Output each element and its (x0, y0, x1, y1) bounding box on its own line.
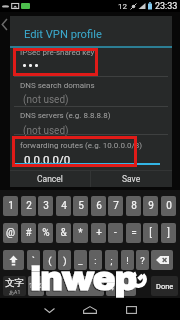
button[interactable]: Back (38, 299, 60, 320)
button[interactable]: ` (27, 250, 40, 270)
button[interactable]: 3 (38, 196, 53, 216)
button[interactable]: 4 (56, 196, 71, 216)
button[interactable] (46, 276, 104, 296)
staticText: IPSec pre-shared key (20, 48, 95, 57)
button[interactable]: ?123 (28, 276, 44, 296)
staticText: 8 (131, 200, 137, 212)
staticText: , (112, 281, 114, 292)
staticText: (not used) (23, 125, 69, 137)
staticText: & (60, 227, 67, 239)
staticText: DNS servers (e.g. 8.8.8.8) (20, 111, 111, 120)
button[interactable]: 6 (91, 196, 106, 216)
staticText: 4 (61, 200, 67, 212)
button[interactable]: : (89, 250, 102, 270)
staticText: Edit VPN profile (24, 28, 102, 41)
staticText: Cancel (37, 174, 63, 184)
staticText: Save (122, 174, 141, 184)
button[interactable]: ] (161, 223, 176, 243)
staticText: ) (63, 255, 67, 266)
staticText: * (78, 227, 83, 239)
button[interactable]: - (108, 223, 123, 243)
staticText: ( (48, 255, 52, 266)
staticText: ; (110, 255, 113, 266)
staticText: 1 (8, 200, 14, 212)
staticText: ?123 (29, 282, 44, 290)
staticText: 7 (113, 200, 119, 212)
button[interactable]: & (56, 223, 71, 243)
button[interactable]: ! (121, 250, 134, 270)
button[interactable]: Done (151, 276, 178, 296)
button[interactable]: 5 (73, 196, 88, 216)
staticText: ` (32, 255, 35, 266)
staticText: inwep (30, 260, 137, 297)
staticText: = (131, 227, 137, 239)
staticText: 23:33 (155, 1, 178, 12)
button[interactable]: _ (74, 250, 87, 270)
staticText: Done (156, 282, 174, 291)
staticText: [ (149, 227, 152, 239)
button[interactable]: Save (91, 171, 172, 187)
button[interactable]: ; (105, 250, 118, 270)
button[interactable]: # (21, 223, 36, 243)
staticText: 0.0.0.0/0 (24, 153, 71, 166)
staticText: 、 (125, 281, 134, 292)
button[interactable]: ( (43, 250, 56, 270)
staticText: + (96, 227, 102, 239)
button[interactable]: 7 (108, 196, 123, 216)
button[interactable]: + (91, 223, 106, 243)
staticText: DNS search domains (20, 81, 95, 90)
button[interactable]: = (126, 223, 141, 243)
staticText: % (42, 227, 50, 239)
button[interactable]: Backspace (151, 250, 173, 270)
button[interactable]: Recent apps (120, 299, 142, 320)
button[interactable]: 1 (3, 196, 18, 216)
staticText: 5 (78, 200, 84, 212)
button[interactable]: ? (136, 250, 149, 270)
button[interactable]: 0 (161, 196, 176, 216)
staticText: あA1 (9, 289, 21, 295)
button[interactable]: 8 (126, 196, 141, 216)
staticText: 0 (166, 200, 172, 212)
button[interactable]: * (73, 223, 88, 243)
staticText: 6 (96, 200, 102, 212)
button[interactable]: Shift (3, 250, 24, 270)
staticText: : (94, 255, 97, 266)
button[interactable]: @ (3, 223, 18, 243)
staticText: 12 (118, 2, 127, 11)
button[interactable]: Home (79, 299, 101, 320)
staticText: (not used) (23, 94, 69, 106)
staticText: ] (167, 227, 170, 239)
staticText: ! (126, 255, 129, 266)
staticText: inwep (29, 261, 136, 298)
staticText: forwarding routes (e.g. 10.0.0.0/8) (20, 141, 143, 150)
button[interactable]: Change language (3, 276, 26, 296)
button[interactable]: % (38, 223, 53, 243)
staticText: 文字 (5, 277, 24, 289)
staticText: ? (140, 255, 145, 266)
button[interactable]: 9 (143, 196, 158, 216)
button[interactable]: 2 (21, 196, 36, 216)
button[interactable]: , (106, 276, 120, 296)
button[interactable]: [ (143, 223, 158, 243)
button[interactable]: 、 (122, 276, 136, 296)
staticText: 3 (43, 200, 49, 212)
staticText: 2 (26, 200, 32, 212)
staticText: 9 (148, 200, 154, 212)
staticText: # (25, 227, 32, 239)
button[interactable]: Cancel (10, 171, 90, 187)
staticText: - (114, 227, 117, 239)
button[interactable]: ) (58, 250, 71, 270)
staticText: @ (6, 227, 15, 239)
staticText: _ (78, 255, 83, 266)
